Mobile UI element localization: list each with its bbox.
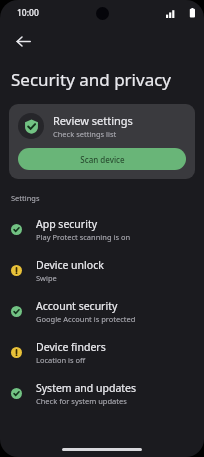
staticText: Check settings list	[53, 129, 117, 139]
button[interactable]: Account security	[0, 291, 204, 332]
staticText: Swipe	[36, 273, 57, 283]
staticText: System and updates	[36, 381, 137, 395]
staticText: Play Protect scanning is on	[36, 232, 131, 242]
staticText: Google Account is protected	[36, 314, 136, 324]
staticText: Review settings	[53, 113, 133, 128]
staticText: Device unlock	[36, 258, 104, 272]
button[interactable]: System and updates	[0, 373, 204, 414]
staticText: Device finders	[36, 340, 106, 354]
staticText: Settings	[11, 193, 40, 203]
button[interactable]: Back	[8, 26, 38, 56]
staticText: App security	[36, 217, 98, 231]
staticText: Check for system updates	[36, 396, 127, 406]
staticText: Security and privacy	[11, 68, 172, 91]
button[interactable]: Scan device	[18, 148, 186, 170]
button[interactable]: Device finders	[0, 332, 204, 373]
button[interactable]: Review settings	[9, 104, 195, 179]
staticText: Account security	[36, 299, 118, 313]
staticText: 10:00	[17, 7, 39, 19]
button[interactable]: Device unlock	[0, 250, 204, 291]
staticText: Scan device	[80, 154, 125, 165]
button[interactable]: App security	[0, 209, 204, 250]
staticText: Location is off	[36, 355, 86, 365]
